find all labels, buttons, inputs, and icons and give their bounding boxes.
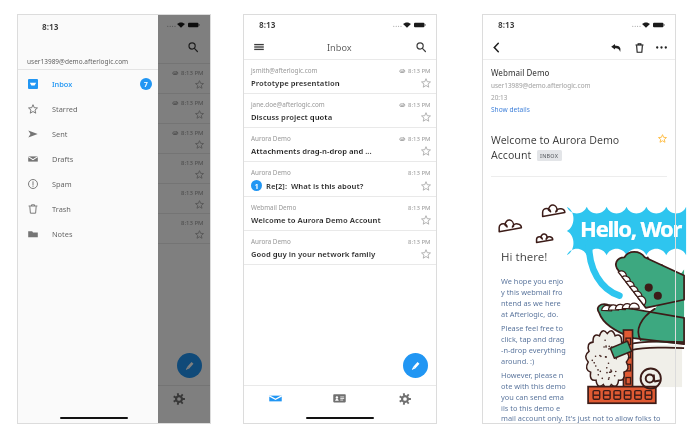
staticText: 8:13 [33,19,50,30]
staticText: jsmith@afterlogic.com [251,66,396,75]
staticText: 8:13 PM [408,135,431,143]
button[interactable]: Webmail Demo [243,197,437,231]
staticText: However, please n ote with this demo you… [501,370,567,413]
staticText: 8:13 PM [181,69,204,77]
staticText: 8:13 PM [181,189,204,197]
staticText: Aurora Demo [251,168,405,177]
staticText: Inbox [327,41,352,54]
staticText: 8:13 PM [181,129,204,137]
staticText: Inbox [52,79,73,89]
button[interactable]: jsmith@afterlogic.com [243,60,437,94]
button[interactable]: Starred [17,96,158,121]
button[interactable]: Compose new message [403,353,428,378]
button[interactable]: Notes [17,221,158,246]
staticText: 8:13 [42,21,59,32]
staticText: Webmail Demo [251,203,405,212]
staticText: Re[2]: What is this about? [266,181,418,191]
button[interactable]: Contacts [307,386,372,411]
staticText: 8:13 PM [181,159,204,167]
button[interactable]: Aurora Demo [243,162,437,197]
button[interactable]: Show details [491,105,530,114]
staticText: 8:13 PM [408,101,431,109]
staticText: Please feel free to click, tap and drag … [501,323,567,366]
staticText: Discuss project quota [251,112,418,122]
staticText: 8:13 [259,19,276,30]
staticText: Notes [52,229,73,239]
button[interactable]: Aurora Demo [243,128,437,162]
staticText: Aurora Demo [251,237,405,246]
button[interactable]: Open navigation drawer [251,39,267,55]
staticText: 8:13 [498,19,515,30]
staticText: Good guy in your network family [251,249,418,259]
staticText: jane.doe@afterlogic.com [251,100,396,109]
staticText: INBOX [540,152,559,159]
staticText: mail account only. It's just not to allo… [501,413,676,423]
staticText: Prototype presentation [251,78,418,88]
staticText: 8:13 PM [181,99,204,107]
button[interactable]: Spam [17,171,158,196]
button[interactable]: jane.doe@afterlogic.com [243,94,437,128]
button[interactable]: Back [489,40,504,55]
staticText: Attachments drag-n-drop and ... [251,146,418,156]
button[interactable]: More options [654,40,669,55]
staticText: 8:13 PM [408,204,431,212]
staticText: Hi there! [501,249,548,265]
staticText: Webmail Demo [491,67,550,78]
button[interactable]: Inbox [17,71,158,96]
button[interactable]: Aurora Demo [243,231,437,265]
staticText: user13989@demo.afterlogic.com [491,81,591,90]
staticText: 8:13 PM [408,238,431,246]
button[interactable]: Mail [243,386,307,411]
staticText: Account [491,148,532,162]
staticText: Sent [52,129,68,139]
staticText: We hope you enjo y this webmail fro nten… [501,276,567,319]
staticText: Drafts [52,154,74,164]
staticText: 7 [144,80,148,89]
staticText: 8:13 PM [408,169,431,177]
staticText: 8:13 PM [181,219,204,227]
button[interactable]: Trash [17,196,158,221]
button[interactable]: Search [413,39,429,55]
staticText: 1 [255,182,259,190]
staticText: Welcome to Aurora Demo Account [251,215,418,225]
button[interactable]: Drafts [17,146,158,171]
staticText: Welcome to Aurora Demo [491,133,620,147]
staticText: 20:13 [491,93,508,102]
button[interactable]: Settings [372,386,437,411]
staticText: Hello, Wor [580,213,682,243]
staticText: Spam [52,179,72,189]
button[interactable]: Delete [632,40,647,55]
button[interactable]: Reply [608,40,623,55]
staticText: 8:13 PM [408,67,431,75]
staticText: Starred [52,104,78,114]
staticText: Trash [52,204,71,214]
staticText: Aurora Demo [251,134,396,143]
button[interactable]: Sent [17,121,158,146]
staticText: user13989@demo.afterlogic.com [27,57,129,66]
